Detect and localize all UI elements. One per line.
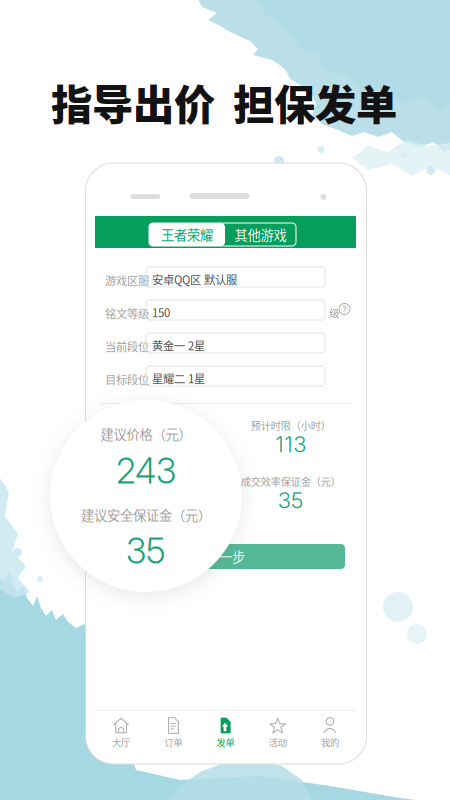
staticText: 243 [116,450,176,492]
button[interactable]: 大厅 [95,711,147,755]
staticText: 游戏区服 [105,272,149,288]
button[interactable]: 订单 [147,711,199,755]
button[interactable]: 活动 [252,711,304,755]
staticText: 预计时限（小时） [251,418,331,433]
staticText: 建议安全保证金（元） [81,505,211,524]
button[interactable]: 安卓QQ区 默认服 [146,267,325,287]
staticText: 星耀二 1星 [152,370,205,386]
button[interactable]: 星耀二 1星 [146,366,325,386]
staticText: 下一步 [206,547,245,566]
staticText: 243 [140,431,180,458]
staticText: ? [342,303,347,315]
staticText: 王者荣耀 [161,225,213,244]
staticText: 35 [278,487,304,514]
staticText: 活动 [269,735,287,749]
staticText: 订单 [164,735,182,749]
staticText: 建议价格（元） [125,418,195,433]
button[interactable]: 其他游戏 [225,223,296,246]
button[interactable]: 下一步 [106,544,345,569]
staticText: 35 [147,487,173,514]
button[interactable]: 我的 [304,711,356,755]
staticText: 我的 [321,735,339,749]
staticText: 150 [152,304,170,320]
staticText: 当前段位 [105,338,149,354]
button[interactable]: 发单 [199,711,252,755]
staticText: 113 [275,431,306,458]
staticText: 安卓QQ区 默认服 [152,271,237,287]
button[interactable]: 150 [146,300,325,320]
staticText: 大厅 [112,735,130,749]
staticText: 指导出价 担保发单 [51,72,397,132]
staticText: 级 [329,305,340,320]
button[interactable]: 黄金一 2星 [146,333,325,353]
staticText: 黄金一 2星 [152,337,205,353]
staticText: 发单 [216,735,234,749]
button[interactable]: 王者荣耀 [149,223,225,246]
staticText: 成交效率保证金（元） [241,474,341,489]
staticText: 其他游戏 [234,225,286,244]
staticText: 目标段位 [105,371,149,387]
staticText: 建议价格（元） [100,424,191,443]
staticText: 35 [126,530,166,572]
staticText: 铭文等级 [105,305,149,321]
staticText: 建议安全保证金（元） [110,474,210,489]
